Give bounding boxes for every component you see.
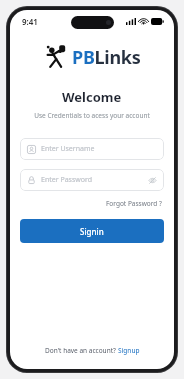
staticText: Signup	[118, 346, 140, 355]
button[interactable]: Forgot Password ?	[104, 197, 164, 210]
staticText: 9:41	[22, 16, 38, 27]
staticText: Use Credentials to acess your account	[34, 111, 150, 120]
staticText: Don't have an account?	[45, 346, 118, 355]
staticText: Enter Username	[41, 144, 157, 154]
staticText: PBLinks	[72, 45, 141, 70]
staticText: Forgot Password ?	[106, 199, 162, 208]
button[interactable]: Enter Password	[20, 169, 164, 191]
staticText: Signin	[80, 226, 104, 237]
button[interactable]: Enter Username	[20, 138, 164, 160]
staticText: Enter Password	[41, 175, 148, 185]
button[interactable]: Show password	[148, 176, 157, 185]
button[interactable]: Signup	[118, 346, 140, 355]
staticText: Welcome	[62, 88, 122, 106]
button[interactable]: Signin	[20, 219, 164, 243]
